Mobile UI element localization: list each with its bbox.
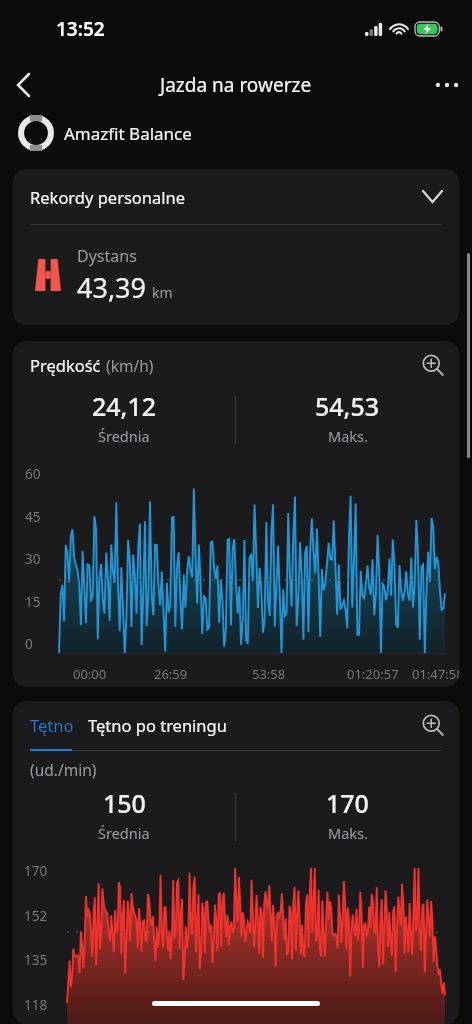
staticText: 30 <box>25 550 41 568</box>
staticText: 152 <box>24 907 48 925</box>
staticText: Maks. <box>328 823 368 843</box>
staticText: 13:52 <box>56 16 105 42</box>
staticText: Tętno <box>30 714 74 736</box>
staticText: km <box>152 283 173 302</box>
staticText: 0 <box>25 635 33 653</box>
staticText: 00:00 <box>73 665 107 683</box>
button[interactable]: Zoom chart <box>413 345 453 385</box>
staticText: 43,39 <box>77 269 147 306</box>
staticText: Prędkość <box>30 354 101 376</box>
button[interactable]: Amazfit Balance <box>0 108 472 158</box>
staticText: 60 <box>25 465 41 483</box>
staticText: 54,53 <box>315 389 380 423</box>
staticText: 150 <box>103 786 146 820</box>
staticText: Dystans <box>77 245 137 267</box>
button[interactable]: Zoom chart <box>413 705 453 745</box>
staticText: 53:58 <box>252 665 286 683</box>
staticText: 01:47:58 <box>412 665 459 683</box>
staticText: (km/h) <box>106 355 154 376</box>
staticText: 26:59 <box>154 665 188 683</box>
button[interactable]: Tętno <box>30 714 74 736</box>
staticText: 118 <box>24 996 48 1014</box>
button[interactable]: More options <box>422 62 472 108</box>
staticText: Tętno po treningu <box>88 714 227 736</box>
staticText: 24,12 <box>92 389 157 423</box>
button[interactable]: Tętno po treningu <box>88 714 227 736</box>
staticText: Rekordy personalne <box>30 186 186 208</box>
staticText: 170 <box>326 786 369 820</box>
staticText: 170 <box>24 862 48 880</box>
button[interactable]: Back <box>0 62 46 108</box>
staticText: Amazfit Balance <box>64 122 192 145</box>
button[interactable]: Rekordy personalne <box>13 169 459 224</box>
staticText: Średnia <box>98 426 150 446</box>
staticText: Jazda na rowerze <box>160 72 312 98</box>
staticText: 15 <box>25 593 41 611</box>
staticText: Maks. <box>328 426 368 446</box>
staticText: 01:20:57 <box>347 665 399 683</box>
staticText: 135 <box>24 951 48 969</box>
staticText: Średnia <box>98 823 150 843</box>
staticText: (ud./min) <box>30 759 97 780</box>
staticText: 45 <box>25 508 41 526</box>
